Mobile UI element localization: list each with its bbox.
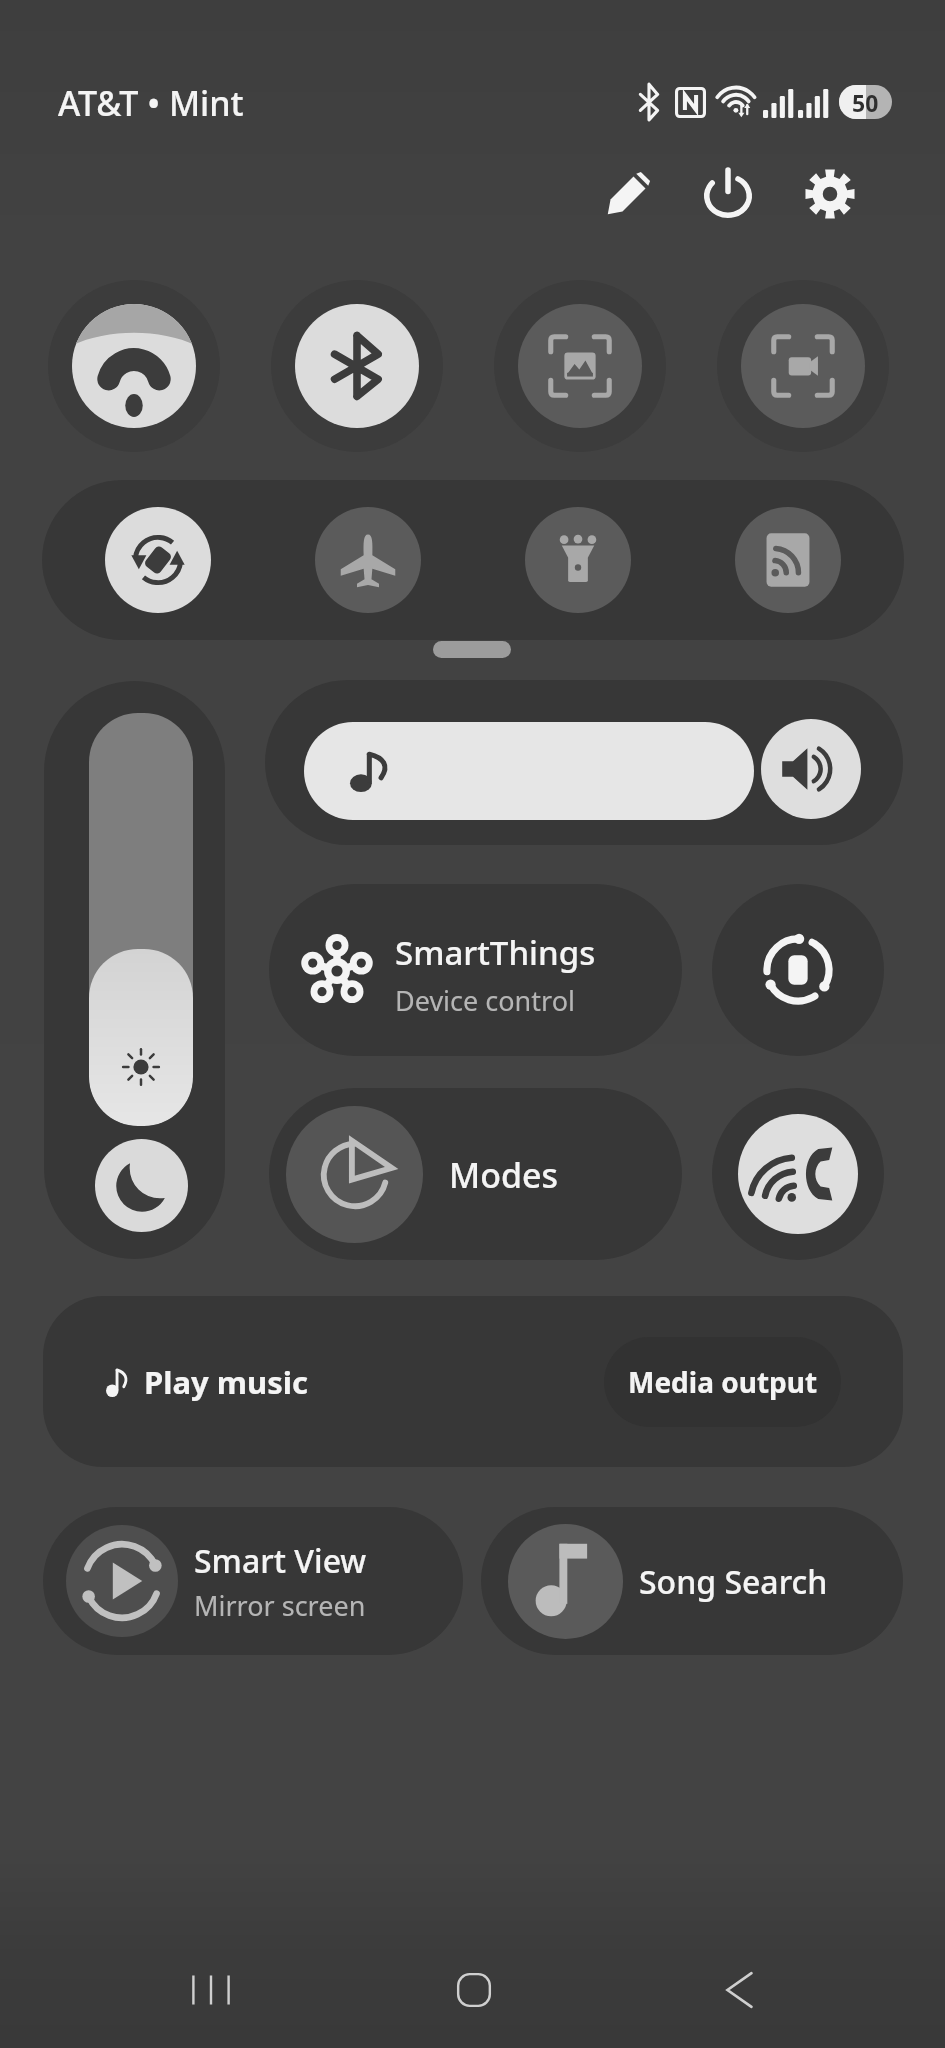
button[interactable]: Screen recorder — [717, 280, 889, 452]
button[interactable]: Smart View — [43, 1507, 463, 1655]
button[interactable]: Smart view — [735, 507, 841, 613]
button[interactable]: Screenshot — [494, 280, 666, 452]
button[interactable]: Brightness — [89, 713, 193, 1126]
button[interactable]: Power — [688, 154, 768, 234]
button[interactable]: Song Search — [481, 1507, 903, 1655]
button[interactable]: Auto rotate — [105, 507, 211, 613]
button[interactable]: Device control — [712, 884, 884, 1056]
button[interactable]: SmartThings — [269, 884, 682, 1056]
staticText: Play music — [144, 1361, 309, 1403]
button[interactable]: Modes — [269, 1088, 682, 1260]
button[interactable]: Back — [679, 1930, 799, 2048]
staticText: Mirror screen — [194, 1587, 366, 1624]
button[interactable]: Edit — [588, 154, 668, 234]
button[interactable]: Home — [414, 1930, 534, 2048]
button[interactable]: Airplane mode — [315, 507, 421, 613]
staticText: Smart View — [194, 1539, 367, 1583]
staticText: Media output — [628, 1363, 818, 1401]
staticText: SmartThings — [395, 930, 596, 975]
button[interactable]: Wi-Fi — [48, 280, 220, 452]
staticText: 50 — [852, 87, 879, 118]
staticText: Song Search — [639, 1560, 828, 1604]
button[interactable]: Sound mode — [761, 719, 861, 819]
button[interactable]: Media volume — [304, 722, 754, 820]
button[interactable]: Play music — [43, 1296, 903, 1467]
staticText: Device control — [395, 982, 575, 1019]
button[interactable]: Settings — [790, 154, 870, 234]
staticText: AT&T • Mint — [58, 80, 244, 126]
button[interactable]: Bluetooth — [271, 280, 443, 452]
button[interactable]: Recents — [151, 1930, 271, 2048]
button[interactable]: Wi-Fi calling — [712, 1088, 884, 1260]
button[interactable]: Media output — [604, 1337, 841, 1427]
button[interactable]: Dark mode — [95, 1139, 188, 1232]
button[interactable]: Flashlight — [525, 507, 631, 613]
staticText: Modes — [449, 1152, 559, 1198]
